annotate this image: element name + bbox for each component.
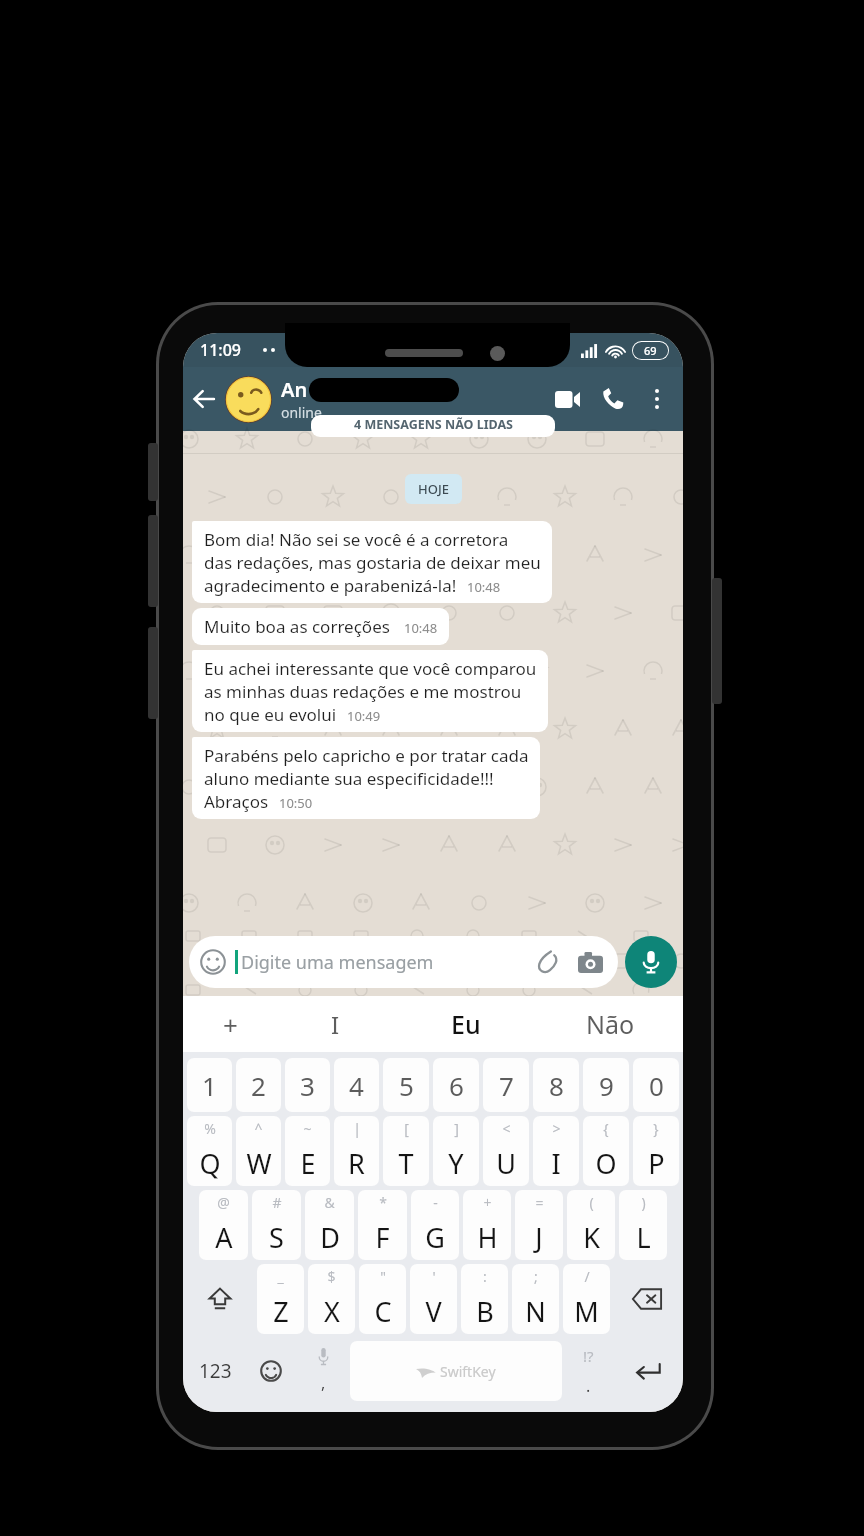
- button[interactable]: >: [533, 1116, 579, 1186]
- button[interactable]: 2: [236, 1058, 281, 1112]
- button[interactable]: ): [619, 1190, 667, 1260]
- button[interactable]: #: [252, 1190, 301, 1260]
- button[interactable]: ~: [285, 1116, 330, 1186]
- button[interactable]: +: [463, 1190, 511, 1260]
- staticText: aluno mediante sua especificidade!!!: [204, 767, 494, 790]
- button[interactable]: ;: [512, 1264, 559, 1334]
- button[interactable]: Digite uma mensagem: [189, 936, 618, 988]
- staticText: Parabéns pelo capricho e por tratar cada: [204, 744, 529, 767]
- button[interactable]: -: [411, 1190, 459, 1260]
- button[interactable]: 7: [483, 1058, 529, 1112]
- staticText: ): [641, 1193, 646, 1212]
- button[interactable]: @: [199, 1190, 248, 1260]
- button[interactable]: Record voice message: [625, 936, 677, 988]
- button[interactable]: (: [567, 1190, 615, 1260]
- button[interactable]: &: [305, 1190, 354, 1260]
- button[interactable]: Bom dia! Não sei se você é a corretora: [192, 521, 552, 603]
- staticText: HOJE: [418, 480, 449, 498]
- staticText: Muito boa as correções: [204, 615, 390, 638]
- button[interactable]: ]: [433, 1116, 479, 1186]
- staticText: _: [277, 1267, 284, 1286]
- button[interactable]: ': [410, 1264, 457, 1334]
- staticText: B: [476, 1293, 494, 1330]
- button[interactable]: Video call: [544, 376, 590, 422]
- button[interactable]: An: [281, 376, 544, 422]
- staticText: #: [272, 1193, 282, 1212]
- button[interactable]: I: [277, 996, 393, 1052]
- staticText: Eu achei interessante que você comparou: [204, 657, 537, 680]
- button[interactable]: Muito boa as correções: [192, 608, 449, 645]
- staticText: 10:49: [347, 707, 381, 725]
- button[interactable]: More options: [636, 378, 678, 420]
- button[interactable]: 9: [583, 1058, 629, 1112]
- button[interactable]: Punctuation and period: [562, 1340, 615, 1402]
- button[interactable]: ^: [236, 1116, 281, 1186]
- staticText: 1: [202, 1068, 217, 1103]
- button[interactable]: /: [563, 1264, 610, 1334]
- button[interactable]: Shift: [185, 1264, 255, 1334]
- button[interactable]: Camera: [573, 945, 607, 979]
- button[interactable]: |: [334, 1116, 379, 1186]
- staticText: online: [281, 403, 322, 422]
- staticText: ^: [254, 1119, 263, 1138]
- staticText: Z: [273, 1293, 289, 1330]
- staticText: A: [215, 1219, 233, 1256]
- button[interactable]: 0: [633, 1058, 679, 1112]
- staticText: V: [425, 1293, 442, 1330]
- staticText: ]: [454, 1119, 459, 1138]
- button[interactable]: ": [359, 1264, 406, 1334]
- staticText: as minhas duas redações e me mostrou: [204, 680, 522, 703]
- button[interactable]: Space: [350, 1341, 562, 1401]
- button[interactable]: 1: [187, 1058, 232, 1112]
- button[interactable]: {: [583, 1116, 629, 1186]
- button[interactable]: Voice input and comma: [297, 1340, 350, 1402]
- button[interactable]: Voice call: [590, 376, 636, 422]
- button[interactable]: [225, 376, 272, 423]
- staticText: ,: [321, 1372, 326, 1394]
- staticText: Não: [586, 1007, 635, 1041]
- staticText: Bom dia! Não sei se você é a corretora: [204, 528, 509, 551]
- staticText: 10:50: [279, 794, 313, 812]
- button[interactable]: _: [257, 1264, 304, 1334]
- staticText: [: [404, 1119, 409, 1138]
- button[interactable]: Eu: [393, 996, 538, 1052]
- button[interactable]: Não: [538, 996, 683, 1052]
- button[interactable]: 8: [533, 1058, 579, 1112]
- button[interactable]: %: [187, 1116, 232, 1186]
- button[interactable]: Emoji: [244, 1340, 297, 1402]
- button[interactable]: :: [461, 1264, 508, 1334]
- button[interactable]: [: [383, 1116, 429, 1186]
- button[interactable]: Eu achei interessante que você comparou: [192, 650, 548, 732]
- staticText: 4 MENSAGENS NÃO LIDAS: [354, 416, 513, 433]
- button[interactable]: 123: [186, 1340, 244, 1402]
- staticText: !?: [583, 1346, 594, 1366]
- button[interactable]: 4: [334, 1058, 379, 1112]
- staticText: 123: [199, 1358, 232, 1384]
- staticText: das redações, mas gostaria de deixar meu: [204, 551, 541, 574]
- button[interactable]: $: [308, 1264, 355, 1334]
- staticText: Abraços: [204, 790, 269, 813]
- button[interactable]: Back: [183, 378, 225, 420]
- button[interactable]: Backspace: [612, 1264, 681, 1334]
- button[interactable]: <: [483, 1116, 529, 1186]
- staticText: agradecimento e parabenizá-la!: [204, 574, 457, 597]
- staticText: +: [223, 1007, 238, 1042]
- button[interactable]: Parabéns pelo capricho e por tratar cada: [192, 737, 540, 819]
- button[interactable]: 3: [285, 1058, 330, 1112]
- button[interactable]: 6: [433, 1058, 479, 1112]
- staticText: =: [535, 1193, 544, 1212]
- button[interactable]: }: [633, 1116, 679, 1186]
- staticText: 0: [649, 1068, 664, 1103]
- button[interactable]: Attach: [531, 945, 565, 979]
- button[interactable]: =: [515, 1190, 563, 1260]
- button[interactable]: Enter: [615, 1340, 680, 1402]
- button[interactable]: More suggestions: [183, 996, 277, 1052]
- staticText: ": [380, 1267, 386, 1286]
- button[interactable]: 5: [383, 1058, 429, 1112]
- staticText: C: [374, 1293, 392, 1330]
- staticText: M: [574, 1293, 599, 1330]
- staticText: W: [246, 1145, 272, 1182]
- button[interactable]: *: [358, 1190, 407, 1260]
- staticText: R: [348, 1145, 365, 1182]
- staticText: N: [525, 1293, 546, 1330]
